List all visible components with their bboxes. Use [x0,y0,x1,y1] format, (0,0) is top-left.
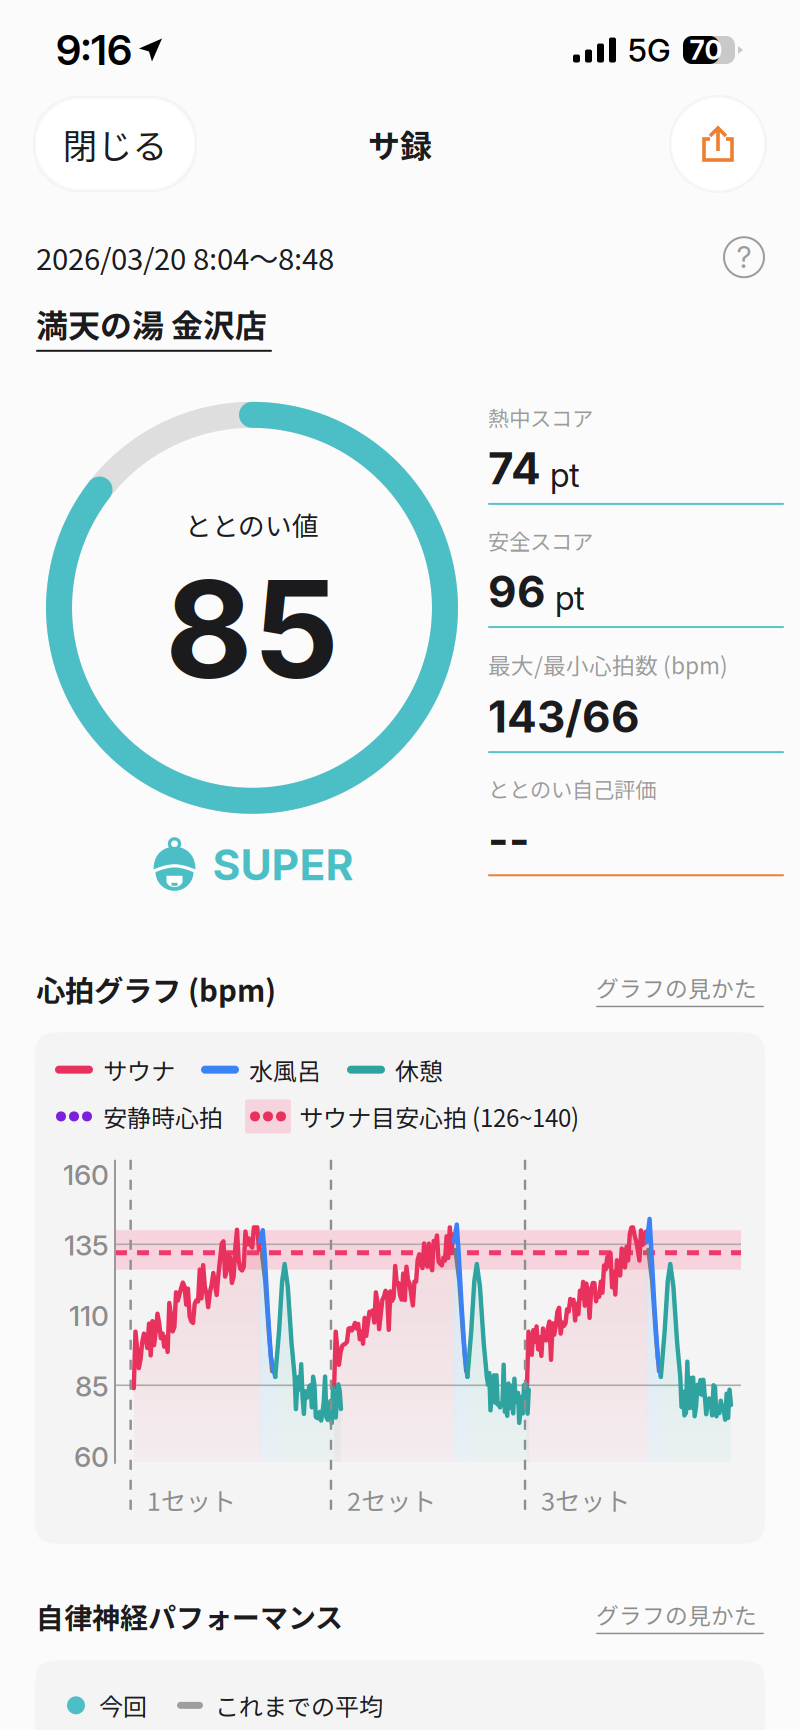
staticText: ととのい自己評価 [488,773,656,804]
staticText: SUPER [212,839,353,891]
staticText: 5G [628,31,671,69]
staticText: 85 [165,548,339,710]
staticText: 85 [75,1369,109,1403]
staticText: pt [555,578,585,618]
staticText: 9:16 [56,25,132,75]
staticText: -- [488,813,530,866]
staticText: 最大/最小心拍数 (bpm) [488,648,728,681]
staticText: 160 [63,1158,109,1192]
staticText: ? [736,239,751,275]
staticText: 3セット [541,1481,630,1518]
button[interactable]: 満天の湯 金沢店 [36,300,272,352]
staticText: グラフの見かた [596,971,757,1004]
button[interactable]: Share [672,98,764,190]
staticText: 60 [74,1440,109,1474]
staticText: 135 [64,1228,109,1262]
staticText: これまでの平均 [215,1688,383,1723]
staticText: 143/66 [488,690,640,743]
staticText: 74 [488,442,541,495]
staticText: pt [550,455,580,495]
staticText: 閉じる [62,119,167,169]
staticText: グラフの見かた [596,1598,757,1631]
staticText: ととのい値 [185,505,319,544]
staticText: 心拍グラフ (bpm) [36,968,276,1010]
staticText: 安全スコア [488,525,593,556]
staticText: 70 [689,34,722,66]
staticText: 2026/03/20 8:04〜8:48 [36,236,334,278]
staticText: 熱中スコア [488,402,593,433]
button[interactable]: グラフの見かた [596,1598,764,1634]
staticText: 安静時心拍 [103,1099,223,1134]
button[interactable]: グラフの見かた [596,971,764,1007]
staticText: 休憩 [395,1052,443,1087]
button[interactable]: Help [724,237,764,277]
staticText: 1セット [147,1481,236,1518]
staticText: 2セット [347,1481,436,1518]
staticText: 110 [69,1299,109,1333]
staticText: 96 [488,565,546,618]
staticText: 自律神経パフォーマンス [36,1596,343,1636]
staticText: サウナ目安心拍 (126~140) [299,1099,579,1134]
staticText: 満天の湯 金沢店 [36,300,267,347]
staticText: サウナ [103,1052,175,1087]
staticText: サ録 [368,121,432,167]
staticText: 今回 [99,1688,147,1723]
button[interactable]: 閉じる [36,99,194,189]
staticText: 水風呂 [249,1052,321,1087]
